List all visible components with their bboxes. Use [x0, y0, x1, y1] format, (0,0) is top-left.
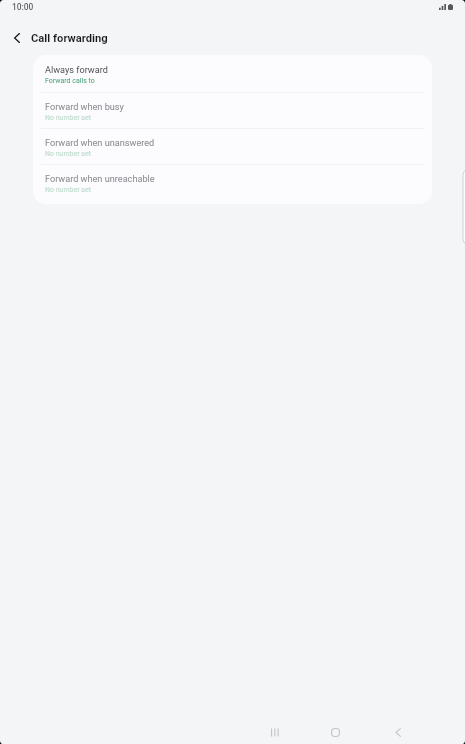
- staticText: Forward when unanswered: [45, 138, 155, 149]
- button[interactable]: Forward when busy: [33, 93, 432, 128]
- button[interactable]: Always forward: [33, 55, 432, 92]
- staticText: Forward when busy: [45, 102, 124, 113]
- staticText: No number set: [45, 150, 91, 158]
- button[interactable]: Recent apps: [261, 719, 290, 744]
- staticText: No number set: [45, 186, 91, 194]
- staticText: Forward when unreachable: [45, 174, 155, 185]
- button[interactable]: Forward when unanswered: [33, 129, 432, 164]
- staticText: Forward calls to: [45, 77, 95, 85]
- button[interactable]: Navigate up: [4, 24, 32, 52]
- staticText: Call forwarding: [31, 32, 108, 45]
- button[interactable]: Home: [321, 719, 350, 744]
- button[interactable]: Back: [383, 719, 412, 744]
- staticText: 10:00: [12, 2, 34, 12]
- button[interactable]: Forward when unreachable: [33, 165, 432, 204]
- staticText: No number set: [45, 114, 91, 122]
- staticText: Always forward: [45, 65, 108, 76]
